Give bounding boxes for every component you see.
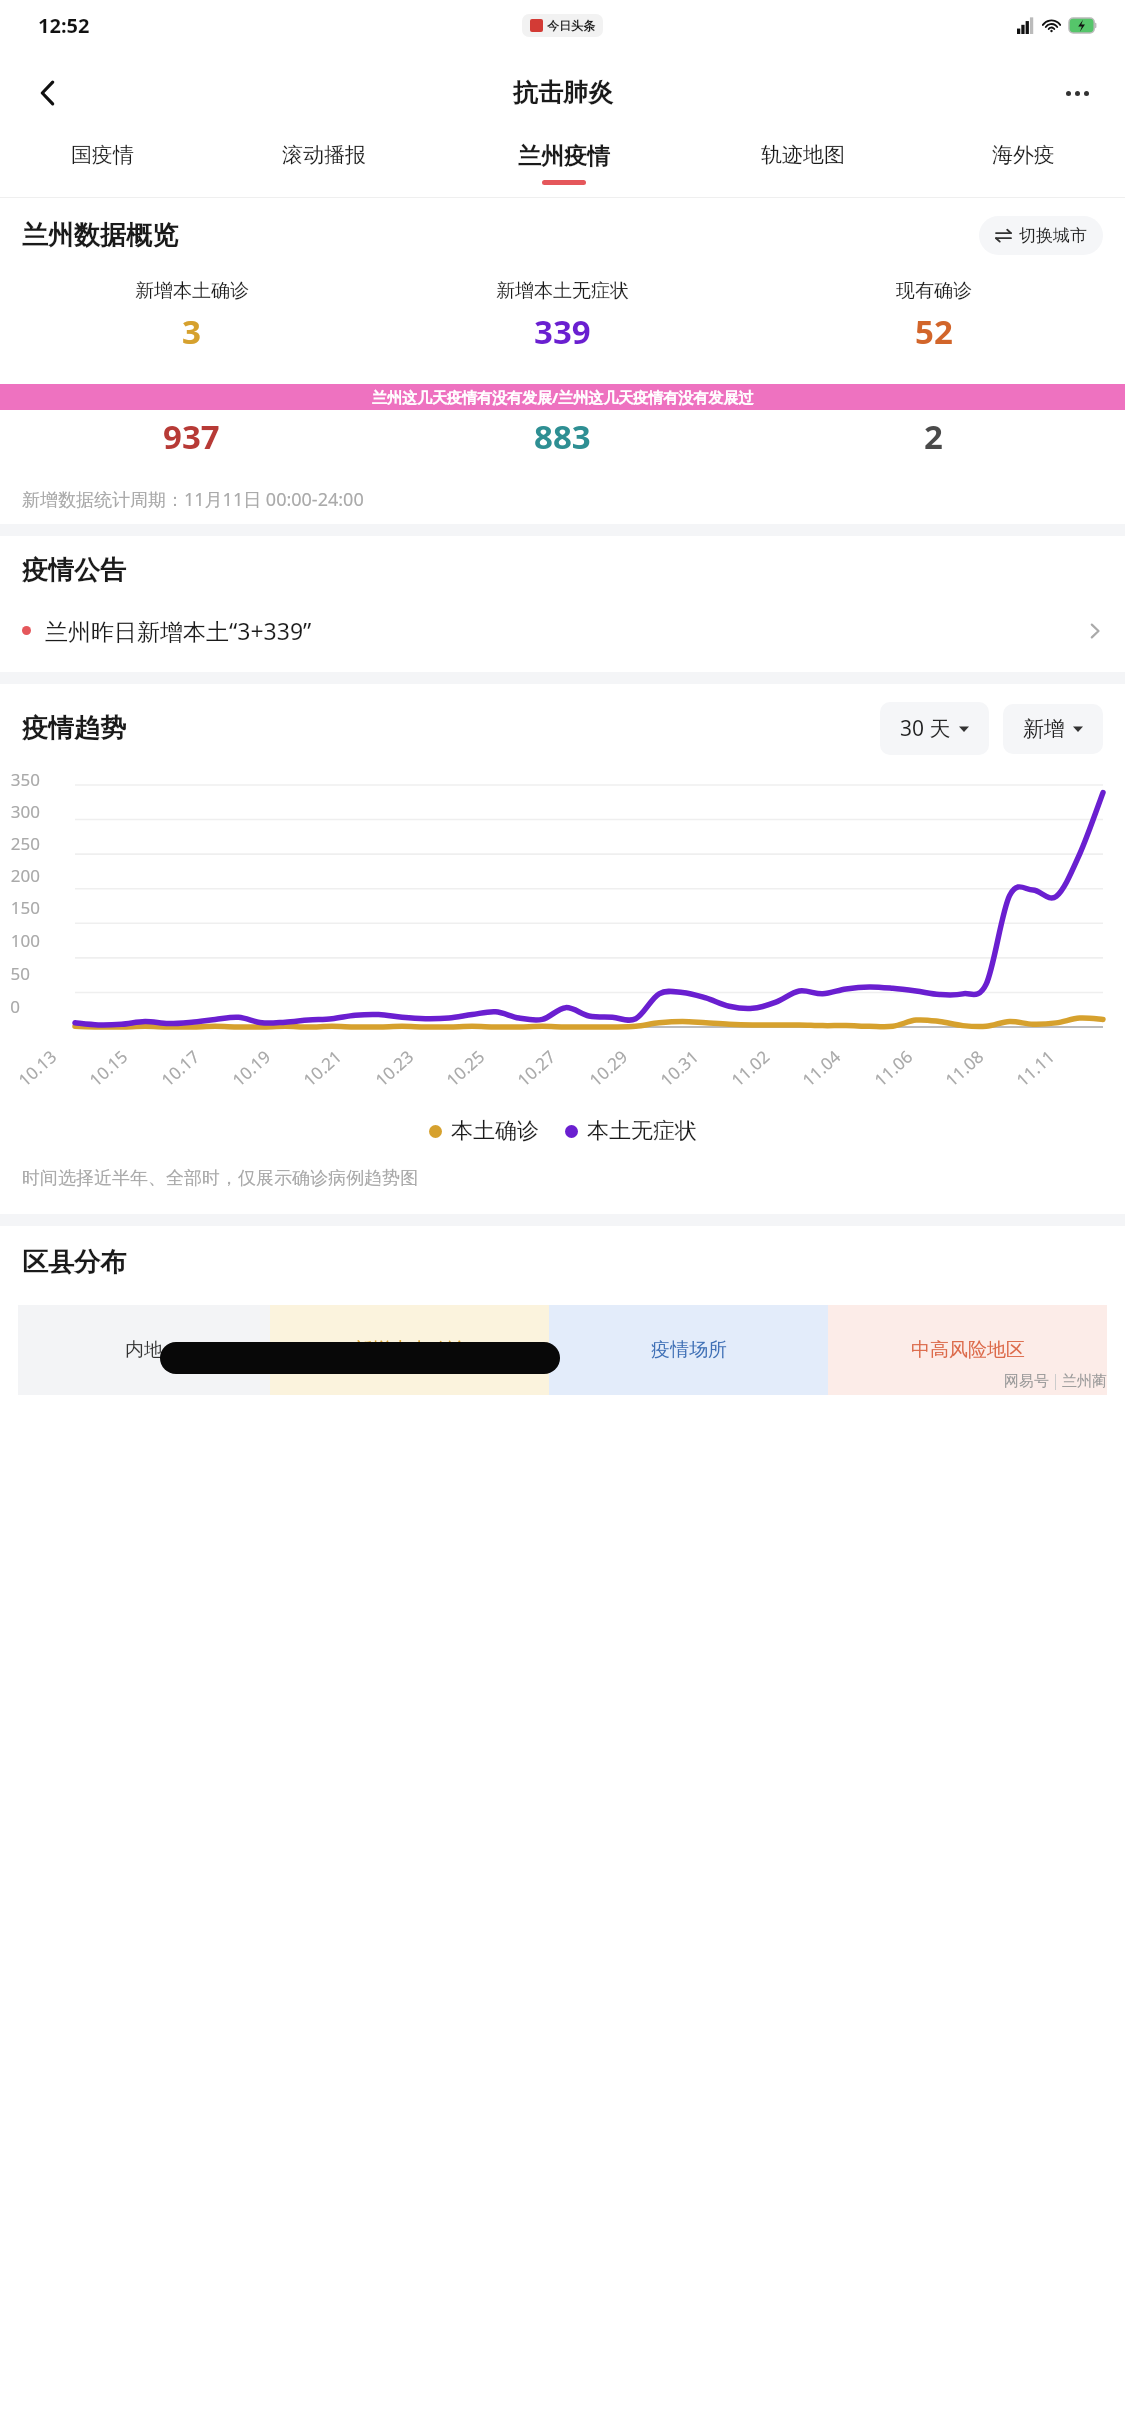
button[interactable]: 国疫情 [0,135,204,198]
staticText: 50 [10,962,30,985]
button[interactable]: 中高风险地区 [828,1305,1107,1395]
staticText: 兰州昨日新增本土“3+339” [45,615,312,646]
staticText: 内地 [125,1338,163,1362]
staticText: 疫情公告 [22,554,126,587]
staticText: 今日头条 [547,18,595,33]
staticText: 10.31 [655,1045,703,1091]
staticText: 10.25 [441,1045,489,1091]
staticText: 11.11 [1011,1045,1059,1091]
button[interactable]: 30 天 [880,702,989,755]
button[interactable]: 切换城市 [979,216,1103,255]
staticText: 现有确诊 [896,279,972,303]
button[interactable]: Back [22,67,74,119]
staticText: 兰州蔺 [1062,1372,1107,1391]
staticText: 10.27 [512,1045,560,1091]
staticText: 11.02 [726,1045,774,1091]
staticText: 新增本土确诊 [353,1338,467,1362]
staticText: 新增数据统计周期：11月11日 00:00-24:00 [22,487,364,512]
staticText: 兰州数据概览 [22,219,178,252]
button[interactable]: 海外疫 [922,135,1125,198]
staticText: 3 [182,309,201,354]
staticText: 0 [10,995,20,1018]
staticText: 国疫情 [71,142,134,168]
staticText: 339 [534,309,591,354]
staticText: 本土无症状 [587,1117,697,1145]
staticText: 10.29 [584,1045,632,1091]
button[interactable]: 内地 [18,1305,270,1395]
staticText: 时间选择近半年、全部时，仅展示确诊病例趋势图 [22,1167,418,1190]
staticText: 11.08 [940,1045,988,1091]
staticText: 52 [915,309,953,354]
staticText: 11.06 [869,1045,917,1091]
button[interactable]: 兰州疫情 [444,135,683,198]
staticText: 新增 [1023,716,1065,742]
staticText: 250 [10,832,40,855]
staticText: 2 [924,414,943,459]
staticText: 累计治愈 [525,384,601,408]
staticText: 海外疫 [992,142,1055,168]
staticText: 10.17 [156,1045,204,1091]
staticText: 10.21 [298,1045,346,1091]
button[interactable]: 新增本土确诊 [270,1305,549,1395]
staticText: 937 [163,414,220,459]
staticText: 兰州这几天疫情有没有发展/兰州这几天疫情有没有发展过 [372,387,754,407]
button[interactable]: 兰州昨日新增本土“3+339” [0,605,1125,656]
staticText: 本土确诊 [451,1117,539,1145]
staticText: 滚动播报 [282,142,366,168]
staticText: 切换城市 [1019,225,1087,246]
staticText: 200 [10,864,40,887]
button[interactable]: 疫情场所 [549,1305,828,1395]
staticText: 10.13 [13,1045,61,1091]
button[interactable]: 滚动播报 [204,135,444,198]
staticText: 883 [534,414,591,459]
staticText: 疫情趋势 [22,712,126,745]
staticText: 兰州疫情 [518,142,610,171]
button[interactable]: 轨迹地图 [683,135,922,198]
staticText: 区县分布 [22,1246,126,1279]
staticText: 疫情场所 [651,1338,727,1362]
staticText: 11.04 [797,1045,845,1091]
staticText: 抗击肺炎 [513,77,613,108]
button[interactable]: More options [1051,67,1103,119]
staticText: 12:52 [38,12,90,39]
button[interactable]: 新增 [1003,704,1103,754]
staticText: 30 天 [900,714,951,743]
staticText: 100 [10,929,40,952]
staticText: 中高风险地区 [911,1338,1025,1362]
staticText: 300 [10,800,40,823]
staticText: 新增本土确诊 [135,279,249,303]
staticText: 10.23 [370,1045,418,1091]
staticText: 网易号 [1004,1372,1049,1391]
staticText: 150 [10,896,40,919]
staticText: 10.19 [227,1045,275,1091]
staticText: 轨迹地图 [761,142,845,168]
staticText: 350 [10,768,40,791]
staticText: 新增本土无症状 [496,279,629,303]
staticText: 10.15 [84,1045,132,1091]
